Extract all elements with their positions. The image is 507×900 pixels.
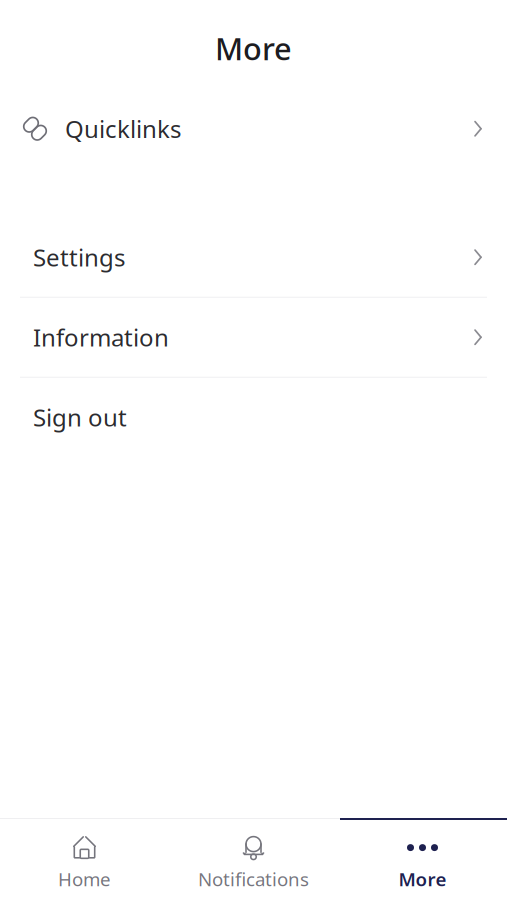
staticText: Home (58, 867, 111, 891)
button[interactable]: Information (0, 298, 507, 377)
staticText: Notifications (198, 867, 309, 891)
button[interactable]: Sign out (0, 378, 507, 457)
button[interactable]: Settings (0, 218, 507, 297)
staticText: More (215, 28, 292, 69)
button[interactable]: Notifications (169, 826, 338, 900)
staticText: Settings (33, 241, 125, 273)
staticText: Information (33, 321, 169, 353)
button[interactable]: Quicklinks (0, 98, 507, 160)
staticText: Quicklinks (65, 113, 181, 145)
staticText: Sign out (33, 401, 127, 433)
button[interactable]: More (338, 826, 507, 900)
staticText: More (398, 867, 446, 891)
button[interactable]: Home (0, 826, 169, 900)
